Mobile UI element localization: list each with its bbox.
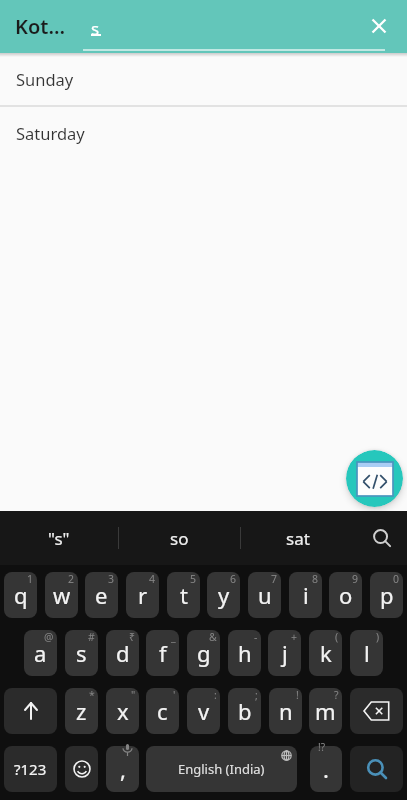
button[interactable]: so [118,511,240,565]
button[interactable]: q [4,572,37,618]
button[interactable]: , [106,746,139,792]
staticText: s [91,17,100,40]
staticText: j [282,638,288,668]
button[interactable]: o [329,572,362,618]
staticText: 3 [108,572,115,586]
button[interactable]: v [187,688,220,734]
button[interactable] [65,746,98,792]
staticText: c [157,696,168,726]
button[interactable]: r [126,572,159,618]
staticText: " [131,688,136,702]
staticText: . [323,754,329,784]
button[interactable]: a [24,630,57,676]
button[interactable] [350,746,403,792]
staticText: Sunday [16,68,74,90]
staticText: o [339,580,353,610]
staticText: English (India) [178,760,265,778]
staticText: , [120,754,126,784]
button[interactable]: w [45,572,78,618]
button[interactable]: h [228,630,261,676]
staticText: t [180,580,188,610]
staticText: ; [255,688,258,702]
staticText: x [117,696,129,726]
staticText: s [76,638,87,668]
button[interactable]: ?123 [4,746,57,792]
button[interactable]: sat [240,511,356,565]
staticText: ! [296,688,299,702]
staticText: ? [334,688,339,702]
staticText: g [197,638,211,668]
button[interactable]: m [309,688,342,734]
staticText: 6 [230,572,237,586]
staticText: y [218,580,230,610]
button[interactable]: l [350,630,383,676]
button[interactable]: f [146,630,179,676]
button[interactable]: Sunday [0,53,407,105]
button[interactable] [369,16,389,36]
staticText: e [95,580,108,610]
staticText: 9 [352,572,359,586]
staticText: ) [376,630,380,644]
staticText: q [14,580,28,610]
button[interactable]: t [167,572,200,618]
staticText: ?123 [14,759,47,779]
staticText: 4 [149,572,156,586]
staticText: 5 [190,572,197,586]
button[interactable]: c [146,688,179,734]
staticText: Kot… [15,13,66,40]
staticText: a [34,638,47,668]
button[interactable]: p [370,572,403,618]
staticText: !? [318,740,326,754]
staticText: w [53,580,71,610]
button[interactable]: d [106,630,139,676]
button[interactable]: n [269,688,302,734]
staticText: - [254,630,258,644]
button[interactable]: z [65,688,98,734]
staticText: sat [286,527,310,550]
staticText: * [89,688,95,702]
button[interactable]: "s" [0,511,118,565]
staticText: @ [44,630,54,644]
staticText: so [170,527,189,550]
button[interactable] [350,688,403,734]
staticText: 2 [68,572,75,586]
staticText: i [303,580,309,610]
staticText: h [238,638,252,668]
staticText: : [214,688,217,702]
staticText: u [258,580,272,610]
button[interactable] [4,688,57,734]
staticText: k [320,638,332,668]
staticText: p [380,580,394,610]
staticText: v [198,696,210,726]
staticText: ₹ [129,630,136,644]
staticText: "s" [48,527,70,550]
button[interactable]: English (India) [146,746,297,792]
staticText: _ [171,630,176,644]
staticText: d [116,638,130,668]
staticText: 0 [393,572,400,586]
button[interactable]: j [268,630,301,676]
staticText: Saturday [16,122,85,144]
button[interactable]: s [65,630,98,676]
staticText: z [76,696,87,726]
staticText: 1 [27,572,34,586]
button[interactable]: b [228,688,261,734]
button[interactable] [346,450,403,507]
button[interactable]: x [106,688,139,734]
button[interactable]: e [85,572,118,618]
staticText: 8 [312,572,319,586]
staticText: n [279,696,293,726]
button[interactable]: Saturday [0,107,407,159]
button[interactable]: y [207,572,240,618]
button[interactable]: k [309,630,342,676]
button[interactable]: u [248,572,281,618]
button[interactable]: . [310,746,342,792]
staticText: + [291,630,298,644]
button[interactable] [362,518,402,558]
button[interactable]: g [187,630,220,676]
staticText: l [364,638,370,668]
staticText: # [88,630,95,644]
staticText: & [209,630,217,644]
button[interactable]: i [289,572,322,618]
staticText: ( [335,630,339,644]
